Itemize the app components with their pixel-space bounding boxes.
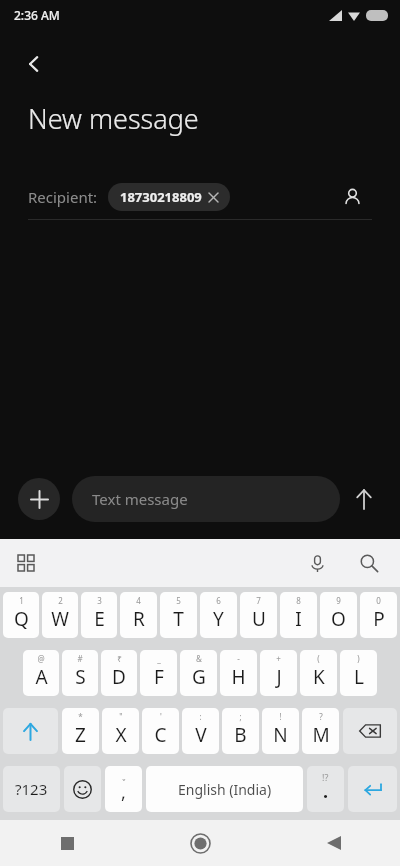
staticText: Y (213, 606, 224, 632)
button[interactable]: Add attachment (18, 478, 60, 520)
button[interactable]: ( (300, 650, 337, 696)
staticText: , (121, 780, 126, 805)
button[interactable]: Back (267, 820, 400, 866)
button[interactable]: ) (340, 650, 377, 696)
staticText: ₹ (117, 653, 122, 664)
button[interactable]: 9 (320, 592, 357, 638)
button[interactable]: 6 (200, 592, 237, 638)
staticText: B (234, 722, 247, 748)
staticText: V (195, 722, 207, 748)
staticText: 5 (176, 595, 181, 606)
button[interactable]: Backspace (343, 708, 397, 754)
staticText: R (133, 606, 145, 632)
button[interactable]: 0 (360, 592, 397, 638)
button[interactable]: 7 (240, 592, 277, 638)
button[interactable]: 4 (120, 592, 157, 638)
button[interactable]: Enter (348, 766, 397, 812)
staticText: . (323, 779, 329, 804)
staticText: 1 (19, 595, 24, 606)
button[interactable]: Contacts (332, 177, 372, 217)
staticText: 8 (296, 595, 301, 606)
button[interactable]: Comma (105, 766, 142, 812)
staticText: ' (160, 711, 162, 722)
staticText: + (276, 653, 281, 664)
staticText: T (173, 606, 184, 632)
button[interactable]: ₹ (101, 650, 137, 696)
staticText: E (94, 606, 105, 632)
staticText: G (192, 664, 206, 690)
staticText: 0 (376, 595, 381, 606)
staticText: & (196, 653, 202, 664)
staticText: A (35, 664, 48, 690)
staticText: 2:36 AM (14, 7, 60, 23)
button[interactable]: 8 (280, 592, 317, 638)
staticText: * (78, 711, 83, 722)
staticText: U (252, 606, 266, 632)
button[interactable]: + (260, 650, 297, 696)
button[interactable]: Period (307, 766, 344, 812)
staticText: W (51, 606, 69, 632)
button[interactable]: # (62, 650, 98, 696)
button[interactable]: Keyboard options (8, 545, 44, 581)
staticText: 2 (58, 595, 63, 606)
staticText: X (115, 722, 127, 748)
staticText: Recipient: (28, 187, 98, 207)
button[interactable]: 3 (81, 592, 117, 638)
button[interactable]: Send (340, 475, 388, 523)
button[interactable]: & (180, 650, 217, 696)
button[interactable]: ' (142, 708, 179, 754)
staticText: C (154, 722, 167, 748)
staticText: Z (75, 722, 86, 748)
staticText: 6 (216, 595, 221, 606)
button[interactable]: Back (10, 40, 58, 88)
button[interactable]: ; (222, 708, 259, 754)
button[interactable]: 18730218809 (108, 183, 230, 211)
staticText: - (237, 653, 240, 664)
staticText: " (119, 711, 123, 722)
staticText: M (312, 722, 330, 748)
button[interactable]: Voice input (300, 546, 334, 580)
staticText: N (273, 722, 288, 748)
button[interactable]: 2 (42, 592, 78, 638)
staticText: New message (28, 100, 199, 137)
staticText: 4 (136, 595, 141, 606)
button[interactable]: * (62, 708, 99, 754)
button[interactable]: Emoji (64, 766, 101, 812)
staticText: !? (322, 771, 329, 783)
button[interactable]: Shift (3, 708, 58, 754)
staticText: 18730218809 (120, 188, 202, 206)
button[interactable]: " (102, 708, 139, 754)
button[interactable]: _ (140, 650, 177, 696)
staticText: K (313, 664, 325, 690)
staticText: H (231, 664, 246, 690)
button[interactable]: Space (146, 766, 303, 812)
button[interactable]: ! (262, 708, 299, 754)
staticText: ?123 (15, 779, 48, 799)
button[interactable]: Search (352, 546, 386, 580)
button[interactable]: ? (302, 708, 339, 754)
staticText: ! (279, 711, 282, 722)
staticText: ; (239, 711, 242, 722)
button[interactable]: Recents (0, 820, 134, 866)
staticText: L (354, 664, 364, 690)
staticText: Q (14, 606, 29, 632)
staticText: _ (157, 653, 161, 664)
button[interactable]: : (182, 708, 219, 754)
staticText: # (77, 653, 83, 664)
button[interactable]: 1 (3, 592, 39, 638)
staticText: 3 (97, 595, 102, 606)
button[interactable]: @ (23, 650, 59, 696)
staticText: D (112, 664, 126, 690)
button[interactable]: Text message (72, 476, 340, 522)
staticText: ? (319, 711, 323, 722)
staticText: : (199, 711, 202, 722)
staticText: English (India) (178, 780, 272, 799)
staticText: F (154, 664, 164, 690)
button[interactable]: - (220, 650, 257, 696)
staticText: P (373, 606, 385, 632)
button[interactable]: 5 (160, 592, 197, 638)
staticText: 7 (256, 595, 261, 606)
staticText: ( (317, 653, 320, 664)
button[interactable]: ?123 (3, 766, 60, 812)
button[interactable]: Home (134, 820, 267, 866)
